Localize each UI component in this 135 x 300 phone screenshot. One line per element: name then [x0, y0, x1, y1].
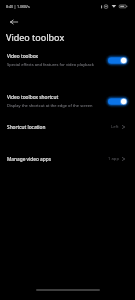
staticText: Video toolbox shortcut	[7, 94, 59, 101]
staticText: Special effects and features for video p…	[7, 62, 94, 67]
staticText: 8:40 | 1.0KB/s	[6, 4, 30, 9]
staticText: Manage video apps	[7, 156, 108, 163]
button[interactable]: Video toolbox	[0, 48, 135, 72]
staticText: 1 app	[108, 156, 119, 162]
button[interactable]	[107, 55, 128, 66]
button[interactable]: Manage video apps	[0, 152, 135, 166]
staticText: Video toolbox	[7, 53, 38, 60]
button[interactable]: Shortcut location	[0, 120, 135, 134]
staticText: Shortcut location	[7, 124, 111, 131]
button[interactable]: Video toolbox shortcut	[0, 89, 135, 113]
staticText: Display the shortcut at the edge of the …	[7, 103, 93, 108]
staticText: Video toolbox	[6, 31, 65, 43]
staticText: Left	[111, 124, 119, 130]
button[interactable]	[107, 96, 128, 107]
button[interactable]: Back	[5, 13, 23, 31]
